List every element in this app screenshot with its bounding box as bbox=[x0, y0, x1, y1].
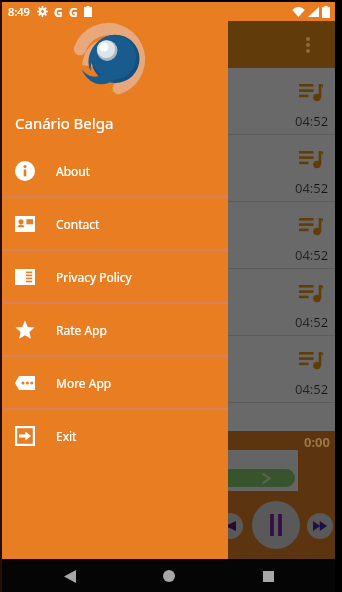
button[interactable]: Previous bbox=[217, 513, 243, 539]
button[interactable]: Recents bbox=[252, 560, 284, 592]
staticText: 04:52 bbox=[295, 112, 329, 130]
button[interactable]: Exit bbox=[2, 410, 228, 461]
staticText: 04:52 bbox=[295, 380, 329, 398]
staticText: 04:52 bbox=[295, 246, 329, 264]
button[interactable]: Next bbox=[307, 513, 333, 539]
staticText: 8:49 bbox=[8, 4, 30, 19]
button[interactable]: Pause bbox=[252, 501, 300, 549]
staticText: G bbox=[54, 4, 63, 20]
staticText: Exit bbox=[56, 428, 77, 444]
staticText: 04:52 bbox=[295, 313, 329, 331]
staticText: Privacy Policy bbox=[56, 269, 132, 285]
staticText: Canário Belga bbox=[15, 113, 114, 133]
staticText: 0:00 bbox=[304, 433, 330, 451]
staticText: Rate App bbox=[56, 322, 107, 338]
button[interactable]: About bbox=[2, 145, 228, 196]
staticText: Contact bbox=[56, 216, 100, 232]
staticText: More App bbox=[56, 375, 112, 391]
button[interactable]: Back bbox=[54, 560, 86, 592]
staticText: G bbox=[69, 4, 78, 20]
button[interactable]: Privacy Policy bbox=[2, 251, 228, 302]
button[interactable]: 04:52 bbox=[2, 269, 335, 336]
button[interactable]: 04:52 bbox=[2, 202, 335, 269]
staticText: 04:52 bbox=[295, 179, 329, 197]
button[interactable]: Home bbox=[153, 560, 185, 592]
staticText: About bbox=[56, 163, 91, 179]
button[interactable]: Rate App bbox=[2, 304, 228, 355]
button[interactable]: 04:52 bbox=[2, 68, 335, 135]
button[interactable]: More App bbox=[2, 357, 228, 408]
button[interactable]: More options bbox=[291, 28, 325, 62]
button[interactable]: Contact bbox=[2, 198, 228, 249]
button[interactable]: 04:52 bbox=[2, 336, 335, 403]
button[interactable]: 04:52 bbox=[2, 135, 335, 202]
